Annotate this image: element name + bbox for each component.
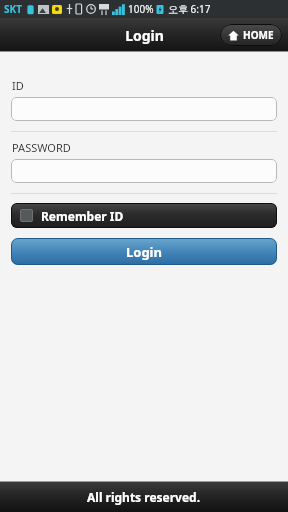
- staticText: 100%: [128, 2, 154, 16]
- staticText: Login: [126, 243, 162, 261]
- staticText: SKT: [4, 2, 22, 16]
- staticText: All rights reserved.: [87, 489, 201, 505]
- staticText: HOME: [243, 28, 274, 42]
- button[interactable]: [11, 97, 277, 121]
- staticText: ID: [12, 78, 24, 93]
- button[interactable]: Login: [11, 238, 277, 265]
- button[interactable]: HOME: [220, 24, 282, 46]
- button[interactable]: [11, 159, 277, 183]
- staticText: PASSWORD: [12, 140, 71, 155]
- staticText: Remember ID: [41, 208, 124, 224]
- button[interactable]: Remember ID: [11, 203, 277, 228]
- staticText: Login: [125, 26, 164, 45]
- staticText: 오후 6:17: [168, 2, 211, 16]
